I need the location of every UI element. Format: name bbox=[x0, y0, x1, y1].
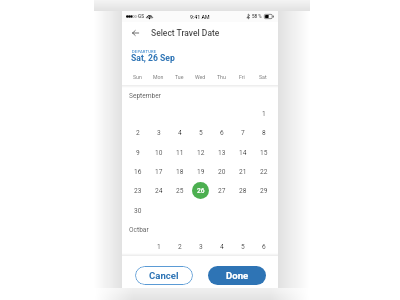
button[interactable]: 30 bbox=[129, 202, 146, 219]
staticText: Tue bbox=[175, 74, 184, 80]
staticText: Cancel bbox=[149, 270, 179, 281]
button[interactable]: 22 bbox=[255, 163, 272, 180]
staticText: 4 bbox=[220, 243, 224, 251]
staticText: 10 bbox=[155, 149, 163, 157]
staticText: 5 bbox=[241, 243, 245, 251]
staticText: 4 bbox=[178, 129, 182, 137]
button[interactable]: 1 bbox=[150, 238, 167, 255]
staticText: 6 bbox=[262, 243, 266, 251]
staticText: Fri bbox=[239, 74, 245, 80]
staticText: 23 bbox=[134, 187, 142, 195]
button[interactable]: 4 bbox=[213, 238, 230, 255]
button[interactable]: 2 bbox=[129, 124, 146, 141]
staticText: 11 bbox=[176, 149, 184, 157]
button[interactable]: 29 bbox=[255, 182, 272, 199]
staticText: 22 bbox=[260, 168, 268, 176]
staticText: 28 bbox=[239, 187, 247, 195]
button[interactable]: 1 bbox=[255, 105, 272, 122]
button[interactable]: 5 bbox=[234, 238, 251, 255]
staticText: 25 bbox=[176, 187, 184, 195]
button[interactable]: 26 bbox=[192, 182, 209, 199]
button[interactable]: 24 bbox=[150, 182, 167, 199]
button[interactable]: 10 bbox=[150, 144, 167, 161]
staticText: 1 bbox=[262, 110, 266, 118]
staticText: 17 bbox=[155, 168, 163, 176]
button[interactable]: 9 bbox=[129, 144, 146, 161]
staticText: 29 bbox=[260, 187, 268, 195]
button[interactable]: 6 bbox=[255, 238, 272, 255]
button[interactable]: 21 bbox=[234, 163, 251, 180]
staticText: Sat, 26 Sep bbox=[131, 53, 175, 63]
staticText: September bbox=[129, 92, 161, 100]
staticText: 58 % bbox=[252, 14, 262, 19]
staticText: 12 bbox=[197, 149, 205, 157]
staticText: Mon bbox=[153, 74, 164, 80]
button[interactable]: 16 bbox=[129, 163, 146, 180]
button[interactable]: 20 bbox=[213, 163, 230, 180]
button[interactable]: 18 bbox=[171, 163, 188, 180]
staticText: 9 bbox=[136, 149, 140, 157]
button[interactable]: 28 bbox=[234, 182, 251, 199]
staticText: Select Travel Date bbox=[151, 28, 220, 38]
button[interactable]: 8 bbox=[255, 124, 272, 141]
staticText: 2 bbox=[136, 129, 140, 137]
staticText: DEPARTURE bbox=[132, 49, 157, 54]
button[interactable]: 12 bbox=[192, 144, 209, 161]
button[interactable]: 4 bbox=[171, 124, 188, 141]
button[interactable]: 11 bbox=[171, 144, 188, 161]
button[interactable]: 15 bbox=[255, 144, 272, 161]
staticText: 3 bbox=[199, 243, 203, 251]
staticText: 2 bbox=[178, 243, 182, 251]
staticText: 24 bbox=[155, 187, 163, 195]
button[interactable]: 6 bbox=[213, 124, 230, 141]
staticText: 5 bbox=[199, 129, 203, 137]
staticText: 16 bbox=[134, 168, 142, 176]
button[interactable]: 19 bbox=[192, 163, 209, 180]
staticText: Sun bbox=[133, 74, 142, 80]
staticText: 20 bbox=[218, 168, 226, 176]
button[interactable]: 2 bbox=[171, 238, 188, 255]
button[interactable]: 23 bbox=[129, 182, 146, 199]
staticText: 1 bbox=[157, 243, 161, 251]
staticText: 15 bbox=[260, 149, 268, 157]
staticText: 13 bbox=[218, 149, 226, 157]
staticText: 3 bbox=[157, 129, 161, 137]
button[interactable]: Done bbox=[208, 266, 266, 285]
staticText: Wed bbox=[195, 74, 206, 80]
staticText: 8 bbox=[262, 129, 266, 137]
staticText: Thu bbox=[217, 74, 226, 80]
staticText: 27 bbox=[218, 187, 226, 195]
staticText: 19 bbox=[197, 168, 205, 176]
button[interactable]: 13 bbox=[213, 144, 230, 161]
staticText: Sat bbox=[259, 74, 267, 80]
button[interactable]: 17 bbox=[150, 163, 167, 180]
button[interactable]: Back bbox=[127, 25, 143, 41]
button[interactable]: 25 bbox=[171, 182, 188, 199]
staticText: GS bbox=[138, 14, 144, 19]
staticText: Octbar bbox=[129, 226, 149, 234]
button[interactable]: 27 bbox=[213, 182, 230, 199]
button[interactable]: 7 bbox=[234, 124, 251, 141]
staticText: 6 bbox=[220, 129, 224, 137]
button[interactable]: 5 bbox=[192, 124, 209, 141]
staticText: 7 bbox=[241, 129, 245, 137]
staticText: 30 bbox=[134, 207, 142, 215]
button[interactable]: 14 bbox=[234, 144, 251, 161]
staticText: 18 bbox=[176, 168, 184, 176]
button[interactable]: Cancel bbox=[135, 266, 193, 285]
staticText: Done bbox=[226, 270, 249, 281]
staticText: 14 bbox=[239, 149, 247, 157]
staticText: 9:41 AM bbox=[190, 14, 210, 20]
button[interactable]: 3 bbox=[192, 238, 209, 255]
staticText: 21 bbox=[239, 168, 247, 176]
button[interactable]: 3 bbox=[150, 124, 167, 141]
staticText: 26 bbox=[197, 187, 205, 195]
